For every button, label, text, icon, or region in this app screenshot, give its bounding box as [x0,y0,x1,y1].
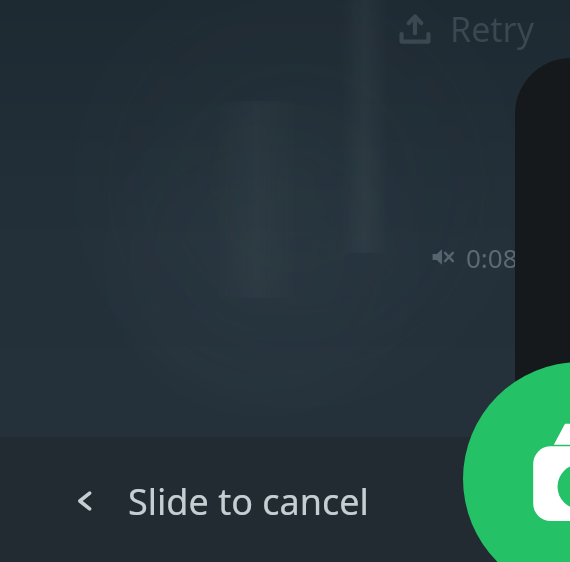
staticText: 0:08 [466,240,518,274]
button[interactable]: Retry upload [394,4,570,54]
staticText: Retry [450,6,534,52]
staticText: Slide to cancel [128,477,369,526]
other: Cancel recording [72,488,98,514]
other: Retry upload [394,8,436,50]
button[interactable]: Cancel recording [72,463,444,539]
other: Muted [430,244,456,270]
button[interactable]: Camera [463,362,570,562]
